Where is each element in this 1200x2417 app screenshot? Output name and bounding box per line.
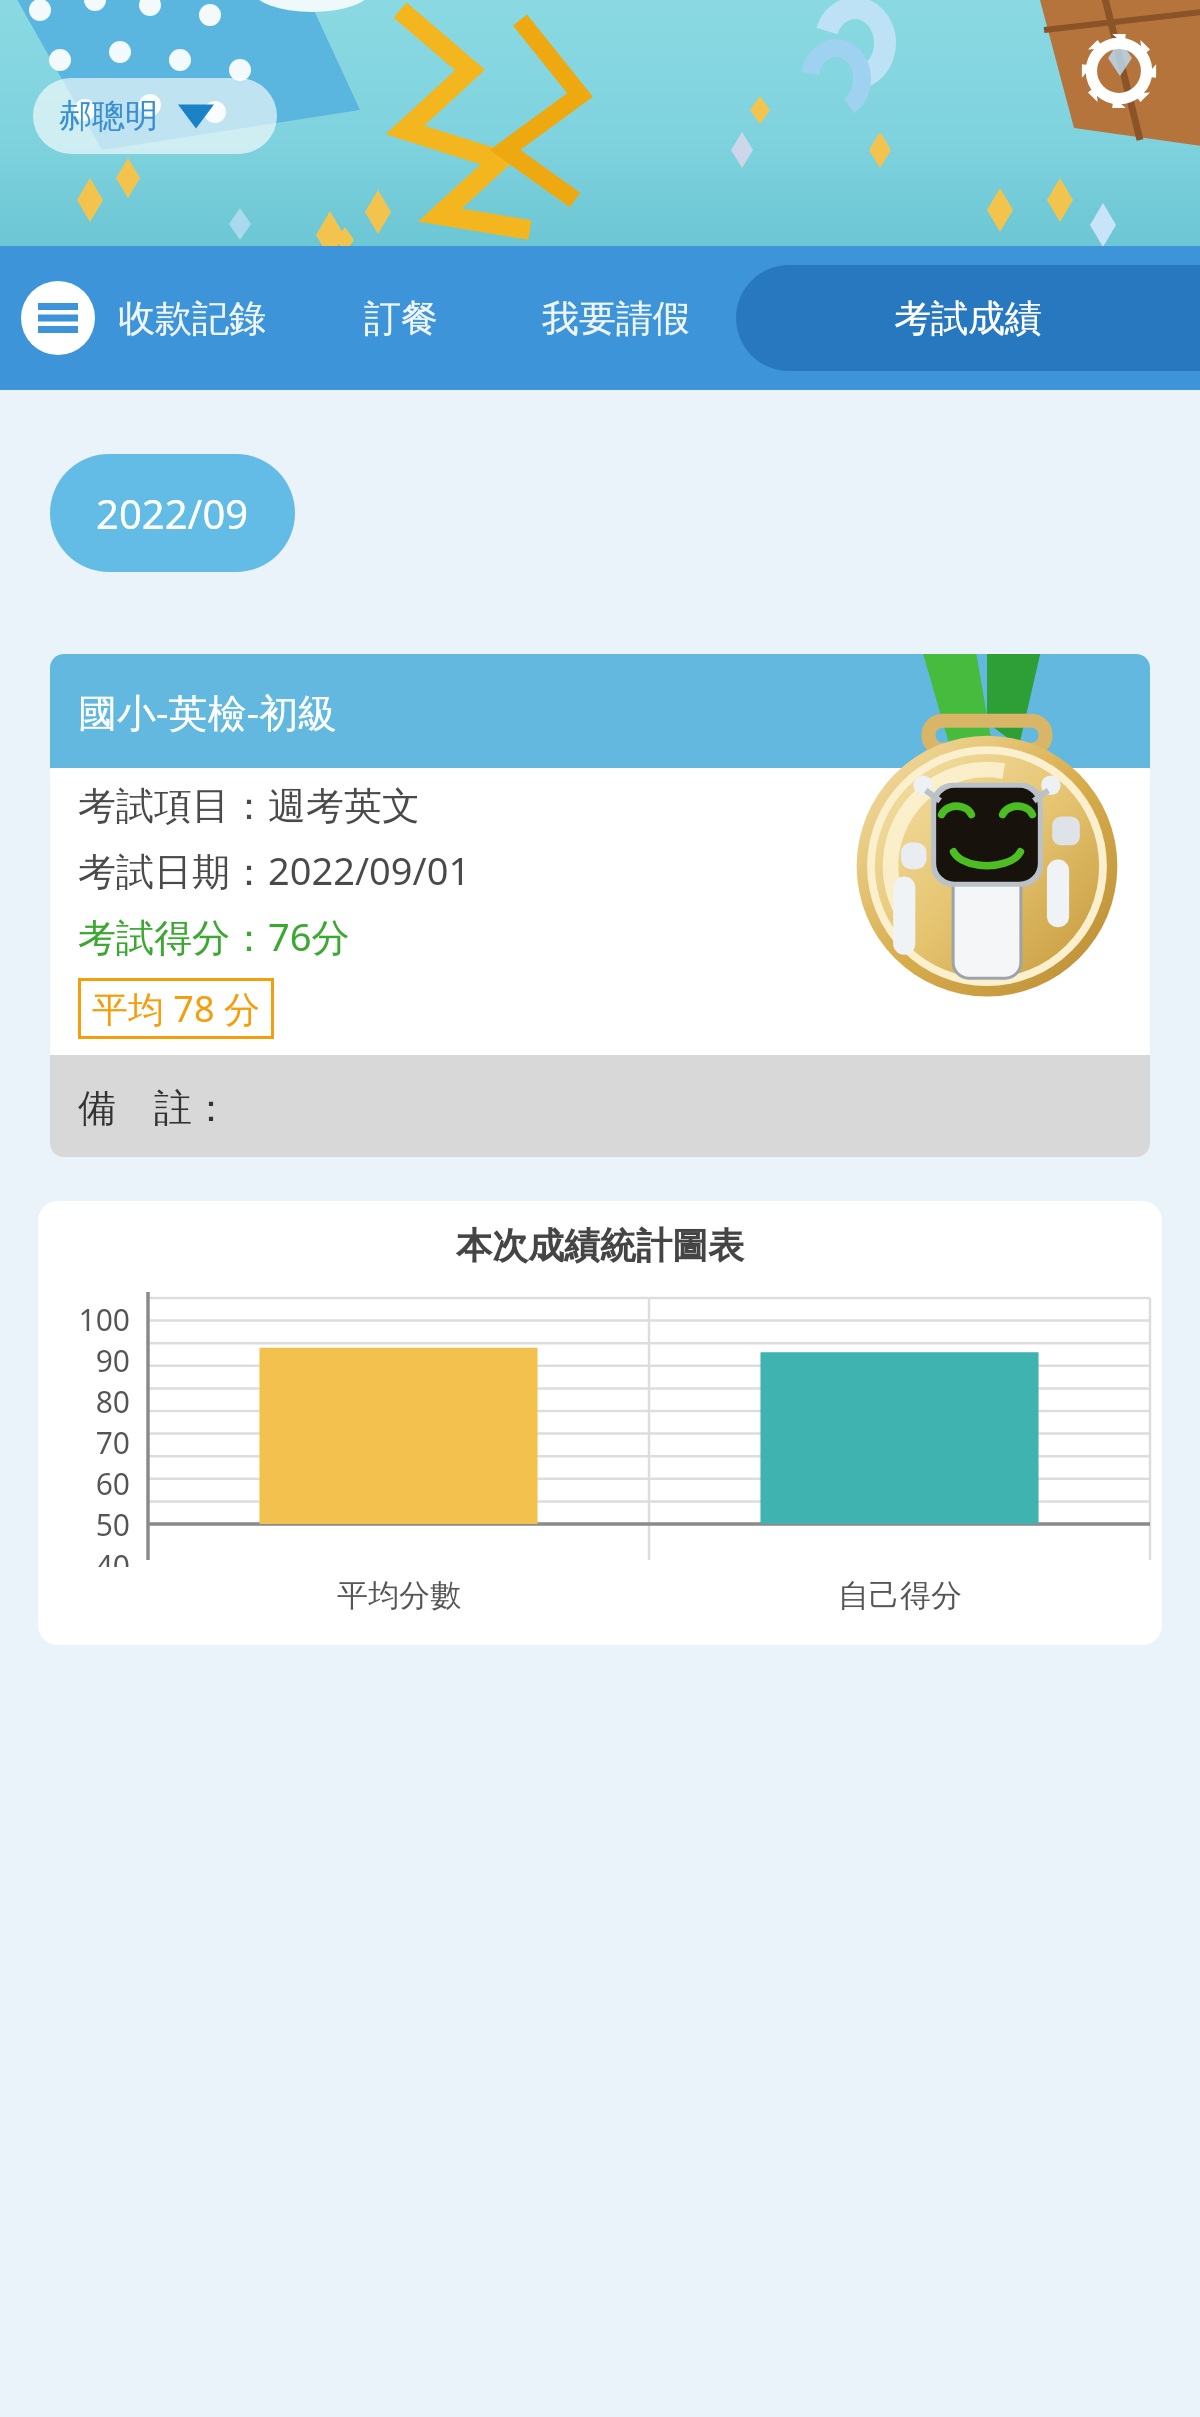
staticText: 考試項目：週考英文 bbox=[78, 782, 420, 830]
staticText: 國小-英檢-初級 bbox=[78, 685, 338, 738]
staticText: 自己得分 bbox=[838, 1576, 962, 1615]
staticText: 考試成績 bbox=[894, 295, 1042, 342]
staticText: 收款記錄 bbox=[118, 295, 266, 342]
button[interactable]: 我要請假 bbox=[496, 265, 736, 371]
staticText: 100 bbox=[60, 1299, 130, 1340]
staticText: 我要請假 bbox=[542, 295, 690, 342]
staticText: 90 bbox=[60, 1340, 130, 1381]
staticText: 80 bbox=[60, 1381, 130, 1422]
button[interactable]: Menu bbox=[21, 281, 95, 355]
button[interactable]: 考試成績 bbox=[736, 265, 1200, 371]
button[interactable]: 收款記錄 bbox=[78, 265, 306, 371]
staticText: 考試日期：2022/09/01 bbox=[78, 844, 471, 896]
button[interactable]: 2022/09 bbox=[50, 454, 295, 572]
button[interactable]: 國小-英檢-初級 bbox=[50, 654, 1150, 1157]
button[interactable]: 郝聰明 bbox=[33, 78, 277, 154]
staticText: 郝聰明 bbox=[59, 95, 158, 137]
button[interactable]: Settings bbox=[1078, 30, 1160, 112]
staticText: 2022/09 bbox=[96, 486, 249, 540]
staticText: 考試得分：76分 bbox=[78, 910, 350, 962]
button[interactable]: 本次成績統計圖表 bbox=[38, 1201, 1162, 1645]
staticText: 備 註： bbox=[78, 1080, 230, 1132]
staticText: 本次成績統計圖表 bbox=[38, 1223, 1162, 1268]
staticText: 訂餐 bbox=[364, 295, 438, 342]
staticText: 50 bbox=[60, 1504, 130, 1545]
button[interactable]: 訂餐 bbox=[306, 265, 496, 371]
staticText: 70 bbox=[60, 1422, 130, 1463]
staticText: 40 bbox=[60, 1545, 130, 1567]
staticText: 平均 78 分 bbox=[92, 984, 260, 1033]
staticText: 平均分數 bbox=[337, 1576, 461, 1615]
staticText: 60 bbox=[60, 1463, 130, 1504]
